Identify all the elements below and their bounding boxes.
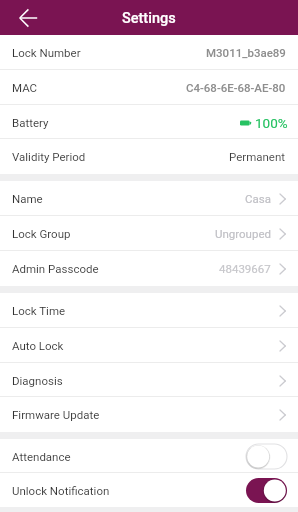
staticText: Lock Time bbox=[12, 304, 66, 317]
staticText: Name bbox=[12, 192, 43, 205]
staticText: Auto Lock bbox=[12, 339, 64, 352]
button[interactable]: Switch off bbox=[246, 444, 287, 469]
staticText: Diagnosis bbox=[12, 374, 63, 387]
staticText: 48439667 bbox=[219, 262, 271, 275]
staticText: Unlock Notification bbox=[12, 484, 110, 497]
button[interactable]: Validity Period bbox=[0, 139, 298, 174]
button[interactable]: Back bbox=[0, 0, 48, 35]
staticText: M3011_b3ae89 bbox=[206, 46, 286, 59]
staticText: MAC bbox=[12, 81, 38, 94]
button[interactable]: MAC bbox=[0, 70, 298, 105]
button[interactable]: Lock Group bbox=[0, 216, 298, 251]
staticText: Lock Number bbox=[12, 46, 81, 59]
button[interactable]: Name bbox=[0, 181, 298, 216]
staticText: Casa bbox=[245, 192, 271, 205]
button[interactable]: Auto Lock bbox=[0, 328, 298, 363]
button[interactable]: Lock Number bbox=[0, 35, 298, 70]
button[interactable]: Attendance bbox=[0, 439, 298, 473]
staticText: 100% bbox=[255, 115, 288, 131]
staticText: Attendance bbox=[12, 450, 71, 463]
button[interactable]: Admin Passcode bbox=[0, 251, 298, 286]
staticText: Validity Period bbox=[12, 150, 86, 163]
staticText: Lock Group bbox=[12, 227, 71, 240]
button[interactable]: Diagnosis bbox=[0, 363, 298, 398]
staticText: Admin Passcode bbox=[12, 262, 99, 275]
button[interactable]: Unlock Notification bbox=[0, 473, 298, 507]
button[interactable]: Switch on bbox=[246, 478, 287, 503]
button[interactable]: Lock Time bbox=[0, 293, 298, 328]
staticText: Battery bbox=[12, 116, 49, 129]
button[interactable]: Firmware Update bbox=[0, 397, 298, 432]
staticText: Permanent bbox=[229, 150, 286, 163]
staticText: Firmware Update bbox=[12, 408, 100, 421]
button[interactable]: Battery bbox=[0, 105, 298, 140]
staticText: Ungrouped bbox=[215, 227, 271, 240]
staticText: Settings bbox=[122, 10, 176, 27]
staticText: C4-68-6E-68-AE-80 bbox=[186, 81, 286, 94]
